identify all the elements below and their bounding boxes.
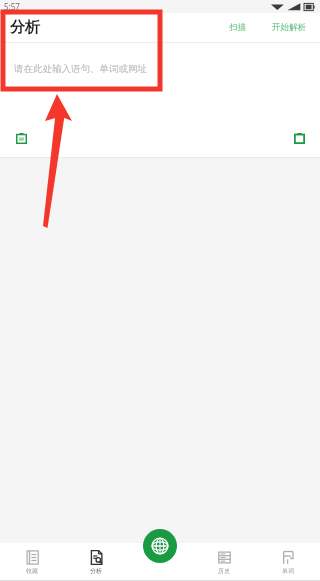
button[interactable]: 收藏 xyxy=(0,547,64,578)
button[interactable]: Clipboard xyxy=(290,129,308,147)
staticText: 请在此处输入语句、单词或网址 xyxy=(14,63,147,75)
staticText: 开始解析 xyxy=(272,22,306,33)
staticText: 扫描 xyxy=(229,22,246,33)
button[interactable]: Paste from clipboard xyxy=(12,129,30,147)
staticText: 分析 xyxy=(10,18,40,37)
staticText: 单词 xyxy=(282,567,294,575)
button[interactable]: 请在此处输入语句、单词或网址 xyxy=(0,43,320,119)
button[interactable]: 开始解析 xyxy=(266,19,312,36)
button[interactable]: 单词 xyxy=(256,547,320,578)
button[interactable]: Translate on the web xyxy=(143,529,177,563)
button[interactable]: 分析 xyxy=(64,547,128,578)
staticText: 5:57 xyxy=(4,1,20,12)
staticText: 分析 xyxy=(90,567,102,575)
staticText: 历史 xyxy=(218,567,230,575)
button[interactable]: 扫描 xyxy=(223,19,252,36)
staticText: 收藏 xyxy=(26,567,38,575)
button[interactable]: 历史 xyxy=(192,547,256,578)
